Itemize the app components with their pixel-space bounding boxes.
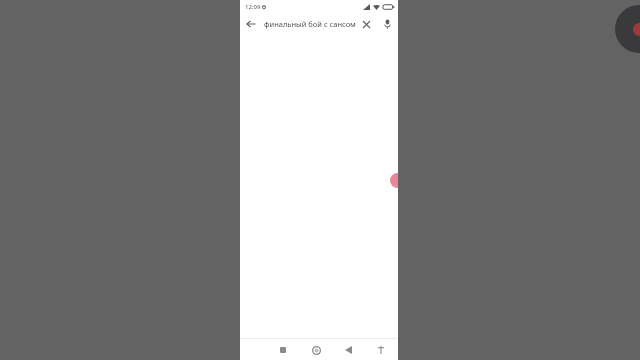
button[interactable]: финальный бой с сансом bbox=[264, 19, 356, 29]
staticText: 12:09 bbox=[245, 3, 261, 11]
button[interactable]: Screen recorder bbox=[615, 5, 640, 53]
button[interactable]: Recents bbox=[274, 341, 292, 359]
button[interactable]: Home bbox=[307, 341, 325, 359]
button[interactable]: Back bbox=[339, 341, 357, 359]
button[interactable]: Voice search bbox=[376, 13, 398, 35]
button[interactable]: Clear bbox=[356, 14, 376, 34]
button[interactable]: Back bbox=[240, 13, 262, 35]
button[interactable]: Switch keyboard bbox=[372, 341, 390, 359]
